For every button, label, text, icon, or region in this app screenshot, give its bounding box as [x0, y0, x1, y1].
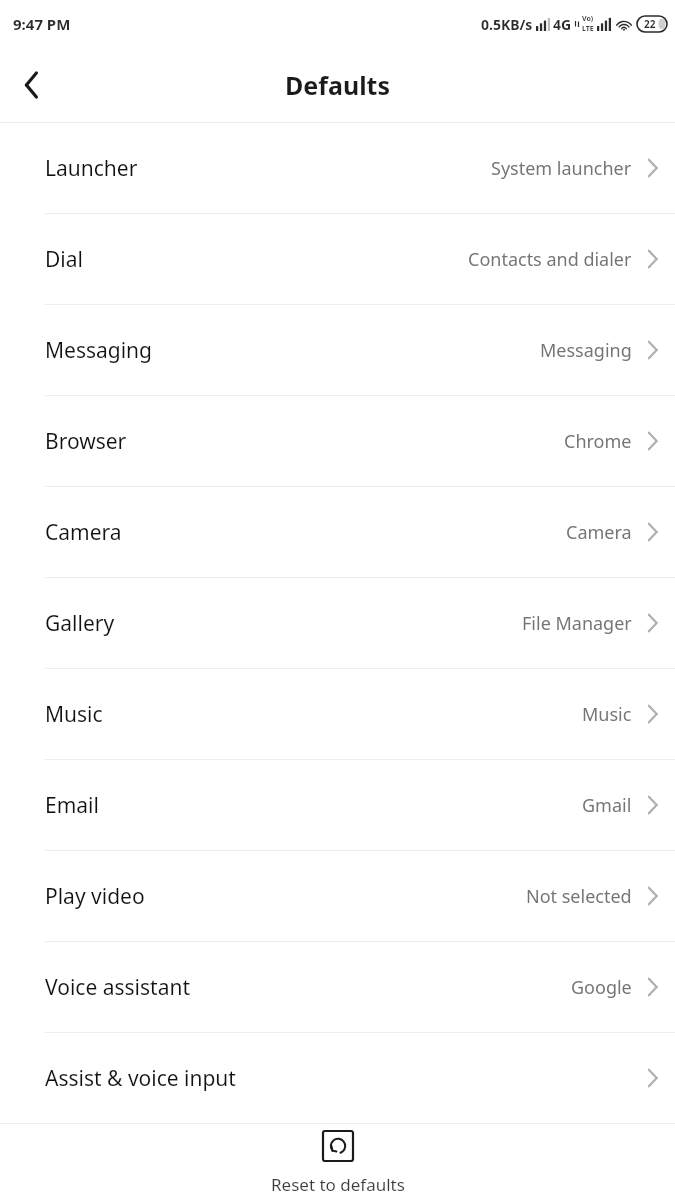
- staticText: Camera: [45, 518, 122, 547]
- staticText: Assist & voice input: [45, 1064, 236, 1093]
- staticText: Chrome: [564, 429, 632, 454]
- staticText: 0.5KB/s: [481, 15, 533, 34]
- staticText: Browser: [45, 427, 127, 456]
- button[interactable]: Email: [0, 760, 675, 850]
- staticText: Messaging: [540, 338, 632, 363]
- staticText: LTE: [582, 24, 594, 34]
- button[interactable]: Messaging: [0, 305, 675, 395]
- button[interactable]: Assist & voice input: [0, 1033, 675, 1123]
- staticText: Not selected: [526, 884, 632, 909]
- staticText: Email: [45, 791, 99, 820]
- button[interactable]: Music: [0, 669, 675, 759]
- button[interactable]: Browser: [0, 396, 675, 486]
- button[interactable]: Camera: [0, 487, 675, 577]
- button[interactable]: Gallery: [0, 578, 675, 668]
- staticText: Music: [45, 700, 103, 729]
- staticText: File Manager: [522, 611, 632, 636]
- staticText: Contacts and dialer: [468, 247, 632, 272]
- staticText: Music: [582, 702, 632, 727]
- staticText: Google: [571, 975, 632, 1000]
- staticText: Defaults: [285, 68, 390, 102]
- staticText: System launcher: [491, 156, 632, 181]
- staticText: Reset to defaults: [271, 1173, 405, 1194]
- button[interactable]: Back: [0, 53, 64, 117]
- button[interactable]: Play video: [0, 851, 675, 941]
- staticText: Gmail: [582, 793, 632, 818]
- staticText: Vo): [582, 14, 594, 24]
- button[interactable]: Dial: [0, 214, 675, 304]
- staticText: 9:47 PM: [13, 14, 71, 34]
- staticText: Messaging: [45, 336, 153, 365]
- staticText: 4G: [553, 15, 572, 34]
- button[interactable]: Reset to defaults: [247, 1125, 429, 1200]
- staticText: Camera: [566, 520, 632, 545]
- staticText: 22: [644, 17, 656, 31]
- button[interactable]: Launcher: [0, 123, 675, 213]
- staticText: Voice assistant: [45, 973, 190, 1002]
- staticText: Gallery: [45, 609, 115, 638]
- staticText: Launcher: [45, 154, 138, 183]
- button[interactable]: Voice assistant: [0, 942, 675, 1032]
- staticText: Play video: [45, 882, 145, 911]
- staticText: Dial: [45, 245, 83, 274]
